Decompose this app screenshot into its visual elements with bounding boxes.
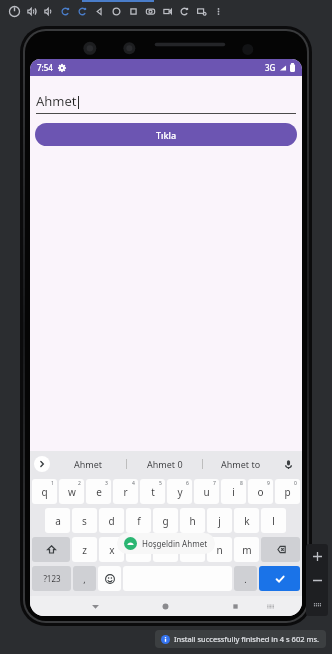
staticText: Ahmet <box>74 458 103 470</box>
button[interactable]: Power <box>6 3 23 19</box>
staticText: Hoşgeldin Ahmet <box>142 538 208 549</box>
button[interactable]: Shift <box>32 537 70 562</box>
button[interactable]: Back <box>91 3 108 19</box>
button[interactable]: Back <box>78 596 113 616</box>
staticText: 4 <box>132 480 135 487</box>
button[interactable]: Emoji <box>98 566 121 591</box>
staticText: Tıkla <box>156 129 177 141</box>
button[interactable]: x <box>99 537 124 562</box>
button[interactable]: Record screen <box>159 3 176 19</box>
staticText: p <box>284 485 291 499</box>
button[interactable]: g <box>153 508 178 533</box>
button[interactable]: Ahmet <box>50 451 126 477</box>
button[interactable]: a <box>45 508 70 533</box>
staticText: x <box>109 543 115 557</box>
button[interactable]: z <box>72 537 97 562</box>
button[interactable]: q <box>32 479 57 504</box>
staticText: s <box>82 514 87 528</box>
button[interactable]: , <box>73 566 96 591</box>
button[interactable]: Enter <box>259 566 300 591</box>
button[interactable]: Device settings <box>193 3 210 19</box>
button[interactable]: Ahmet to <box>203 451 278 477</box>
button[interactable]: k <box>234 508 259 533</box>
button[interactable]: u <box>194 479 219 504</box>
button[interactable]: s <box>72 508 97 533</box>
staticText: r <box>123 485 128 499</box>
button[interactable]: Zoom out <box>306 568 328 592</box>
staticText: g <box>162 514 169 528</box>
button[interactable]: Expand suggestions <box>34 456 50 472</box>
button[interactable]: Switch keyboard <box>253 596 288 616</box>
staticText: a <box>55 514 61 528</box>
staticText: v <box>163 543 169 557</box>
staticText: k <box>244 514 250 528</box>
staticText: z <box>82 543 87 557</box>
staticText: 6 <box>186 480 189 487</box>
button[interactable]: Screenshot <box>142 3 159 19</box>
staticText: n <box>216 543 223 557</box>
staticText: b <box>189 543 196 557</box>
staticText: m <box>242 543 252 557</box>
button[interactable]: r <box>113 479 138 504</box>
button[interactable]: Volume up <box>23 3 40 19</box>
button[interactable]: Voice input <box>278 451 298 477</box>
button[interactable]: j <box>207 508 232 533</box>
button[interactable]: Volume down <box>40 3 57 19</box>
button[interactable]: m <box>234 537 259 562</box>
button[interactable]: w <box>59 479 84 504</box>
staticText: Ahmet 0 <box>147 458 183 470</box>
staticText: 9 <box>267 480 270 487</box>
button[interactable]: n <box>207 537 232 562</box>
button[interactable]: y <box>167 479 192 504</box>
button[interactable]: ?123 <box>32 566 71 591</box>
staticText: Ahmet to <box>221 458 261 470</box>
button[interactable]: d <box>99 508 124 533</box>
staticText: 1 <box>51 480 54 487</box>
staticText: Ahmet <box>36 92 77 110</box>
button[interactable]: l <box>261 508 286 533</box>
button[interactable]: Recents <box>218 596 253 616</box>
button[interactable]: Rotate left <box>57 3 74 19</box>
button[interactable]: f <box>126 508 151 533</box>
button[interactable]: t <box>140 479 165 504</box>
button[interactable]: i <box>221 479 246 504</box>
staticText: u <box>203 485 210 499</box>
staticText: o <box>257 485 264 499</box>
staticText: 8 <box>240 480 243 487</box>
staticText: l <box>272 514 275 528</box>
staticText: c <box>136 543 141 557</box>
button[interactable]: p <box>275 479 300 504</box>
button[interactable]: . <box>234 566 257 591</box>
button[interactable]: Rotate right <box>74 3 91 19</box>
button[interactable]: Keyboard shortcuts <box>306 592 328 616</box>
staticText: 2 <box>78 480 81 487</box>
button[interactable]: h <box>180 508 205 533</box>
button[interactable]: History <box>176 3 193 19</box>
button[interactable]: Zoom in <box>306 544 328 568</box>
button[interactable]: o <box>248 479 273 504</box>
button[interactable]: More <box>210 3 227 19</box>
button[interactable]: Ahmet 0 <box>127 451 202 477</box>
button[interactable]: Home <box>148 596 183 616</box>
staticText: f <box>137 514 141 528</box>
button[interactable]: Backspace <box>261 537 300 562</box>
button[interactable]: Home <box>108 3 125 19</box>
staticText: q <box>41 485 48 499</box>
button[interactable]: Tıkla <box>35 123 297 146</box>
staticText: 7 <box>213 480 216 487</box>
button[interactable]: c <box>126 537 151 562</box>
staticText: e <box>96 485 102 499</box>
staticText: ?123 <box>43 573 61 584</box>
button[interactable]: Overview <box>125 3 142 19</box>
button[interactable]: e <box>86 479 111 504</box>
staticText: t <box>151 485 155 499</box>
button[interactable]: Ahmet <box>36 92 296 114</box>
staticText: 3G <box>265 62 276 73</box>
staticText: . <box>244 573 247 585</box>
staticText: y <box>177 485 183 499</box>
staticText: 7:54 <box>37 62 53 73</box>
button[interactable]: b <box>180 537 205 562</box>
staticText: 5 <box>159 480 162 487</box>
button[interactable]: v <box>153 537 178 562</box>
